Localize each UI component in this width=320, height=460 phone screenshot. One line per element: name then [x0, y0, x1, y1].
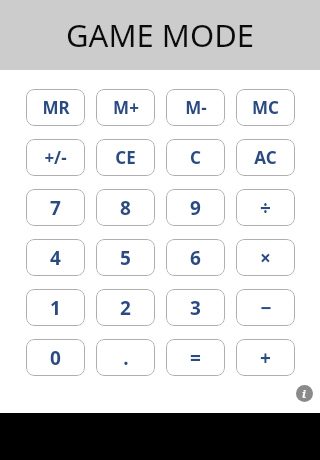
staticText: 2 — [120, 295, 131, 321]
button[interactable]: 3 — [166, 289, 225, 326]
staticText: 1 — [50, 295, 61, 321]
button[interactable]: CE — [96, 139, 155, 176]
staticText: M- — [185, 96, 207, 119]
button[interactable]: AC — [236, 139, 295, 176]
button[interactable]: 0 — [26, 339, 85, 376]
staticText: 8 — [120, 195, 131, 221]
button[interactable]: 8 — [96, 189, 155, 226]
button[interactable]: MR — [26, 89, 85, 126]
staticText: i — [302, 386, 306, 401]
button[interactable]: +/- — [26, 139, 85, 176]
staticText: +/- — [44, 146, 67, 169]
staticText: + — [260, 345, 271, 371]
button[interactable]: 9 — [166, 189, 225, 226]
button[interactable]: = — [166, 339, 225, 376]
button[interactable]: + — [236, 339, 295, 376]
staticText: C — [190, 146, 201, 169]
button[interactable]: . — [96, 339, 155, 376]
button[interactable]: 2 — [96, 289, 155, 326]
staticText: . — [123, 345, 129, 371]
staticText: × — [260, 245, 271, 271]
staticText: M+ — [113, 96, 139, 119]
button[interactable]: 7 — [26, 189, 85, 226]
staticText: CE — [115, 146, 136, 169]
staticText: GAME MODE — [66, 14, 254, 56]
button[interactable]: MC — [236, 89, 295, 126]
button[interactable]: M- — [166, 89, 225, 126]
button[interactable]: 6 — [166, 239, 225, 276]
staticText: MC — [252, 96, 279, 119]
button[interactable]: C — [166, 139, 225, 176]
staticText: − — [260, 295, 272, 321]
button[interactable]: 1 — [26, 289, 85, 326]
staticText: 6 — [190, 245, 201, 271]
button[interactable]: 4 — [26, 239, 85, 276]
staticText: = — [190, 345, 201, 371]
staticText: 0 — [50, 345, 61, 371]
staticText: 4 — [50, 245, 61, 271]
staticText: MR — [42, 96, 70, 119]
button[interactable]: 5 — [96, 239, 155, 276]
staticText: ÷ — [260, 195, 271, 221]
button[interactable]: M+ — [96, 89, 155, 126]
button[interactable]: × — [236, 239, 295, 276]
staticText: 7 — [50, 195, 61, 221]
button[interactable]: − — [236, 289, 295, 326]
staticText: 3 — [190, 295, 201, 321]
staticText: AC — [254, 146, 277, 169]
button[interactable]: ÷ — [236, 189, 295, 226]
staticText: 5 — [120, 245, 131, 271]
staticText: 9 — [190, 195, 201, 221]
button[interactable]: Info — [292, 381, 316, 405]
